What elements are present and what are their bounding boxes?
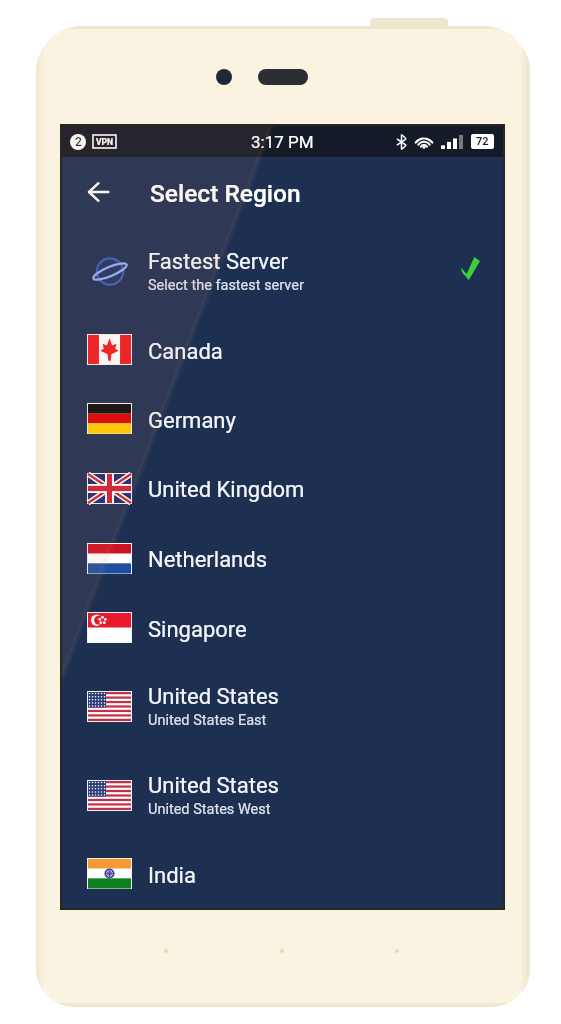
button[interactable]: Back <box>76 170 120 214</box>
staticText: United Kingdom <box>148 477 305 503</box>
button[interactable]: Germany <box>62 384 503 453</box>
staticText: United States <box>148 773 279 799</box>
staticText: United States <box>148 684 279 710</box>
staticText: Select Region <box>150 179 301 208</box>
staticText: India <box>148 863 196 889</box>
staticText: Canada <box>148 339 223 365</box>
staticText: Fastest Server <box>148 249 289 275</box>
button[interactable]: Canada <box>62 315 503 384</box>
staticText: Germany <box>148 408 236 434</box>
button[interactable]: Singapore <box>62 593 503 662</box>
staticText: 72 <box>476 135 489 148</box>
staticText: Netherlands <box>148 547 268 573</box>
button[interactable]: India <box>62 839 503 908</box>
staticText: United States East <box>148 712 267 729</box>
staticText: United States West <box>148 801 271 818</box>
button[interactable]: United States <box>62 751 503 839</box>
staticText: 3:17 PM <box>251 132 314 152</box>
staticText: Singapore <box>148 617 247 643</box>
button[interactable]: United Kingdom <box>62 453 503 523</box>
staticText: 2 <box>75 135 82 149</box>
staticText: VPN <box>96 137 114 147</box>
button[interactable]: Netherlands <box>62 523 503 593</box>
button[interactable]: Fastest Server <box>62 227 503 315</box>
staticText: Select the fastest server <box>148 277 304 294</box>
button[interactable]: United States <box>62 662 503 751</box>
